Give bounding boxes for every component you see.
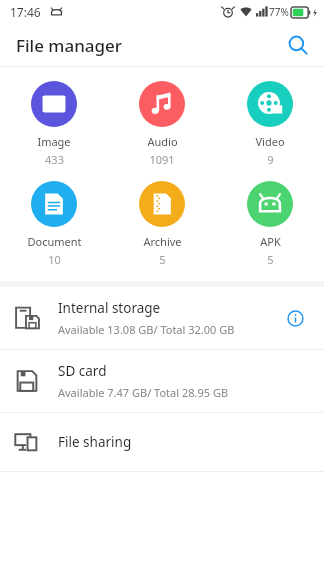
staticText: 77% [269, 5, 289, 19]
staticText: 10 [48, 252, 61, 267]
staticText: Internal storage [58, 299, 161, 317]
staticText: 1091 [149, 152, 175, 167]
staticText: 433 [45, 152, 64, 167]
staticText: Audio [147, 134, 178, 149]
staticText: Video [255, 134, 285, 149]
staticText: SD card [58, 362, 107, 380]
button[interactable]: APK [216, 181, 324, 267]
staticText: File sharing [58, 433, 132, 451]
staticText: 9 [267, 152, 274, 167]
staticText: Archive [143, 234, 182, 249]
button[interactable]: Video [216, 81, 324, 167]
button[interactable]: SD card [0, 350, 324, 412]
button[interactable]: File sharing [0, 413, 324, 471]
button[interactable]: Storage info [280, 303, 310, 333]
staticText: File manager [16, 34, 123, 57]
button[interactable]: Image [0, 81, 108, 167]
button[interactable]: Search [280, 27, 316, 63]
staticText: Image [37, 134, 71, 149]
staticText: 17:46 [10, 4, 41, 20]
staticText: Available 13.08 GB/ Total 32.00 GB [58, 322, 235, 337]
staticText: 5 [159, 252, 166, 267]
button[interactable]: Archive [108, 181, 216, 267]
staticText: APK [260, 234, 281, 249]
staticText: Available 7.47 GB/ Total 28.95 GB [58, 385, 229, 400]
staticText: Document [27, 234, 82, 249]
staticText: 5 [267, 252, 274, 267]
button[interactable]: Internal storage [0, 287, 324, 349]
button[interactable]: Document [0, 181, 108, 267]
button[interactable]: Audio [108, 81, 216, 167]
